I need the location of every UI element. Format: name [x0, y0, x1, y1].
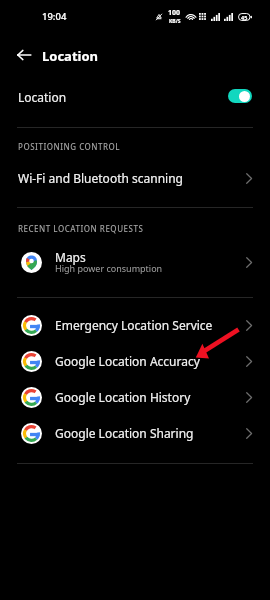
- staticText: Emergency Location Service: [55, 317, 246, 333]
- staticText: Google Location Sharing: [55, 425, 246, 441]
- staticText: RECENT LOCATION REQUESTS: [18, 223, 144, 234]
- staticText: Location: [18, 89, 228, 105]
- button[interactable]: Location: [0, 78, 270, 114]
- staticText: High power consumption: [55, 262, 163, 274]
- staticText: Google Location Accuracy: [55, 353, 246, 369]
- button[interactable]: Wi-Fi and Bluetooth scanning: [0, 161, 270, 195]
- staticText: POSITIONING CONTROL: [18, 141, 121, 152]
- staticText: KB/S: [169, 18, 181, 25]
- staticText: Location: [42, 47, 98, 65]
- staticText: 45: [241, 14, 248, 21]
- staticText: Wi-Fi and Bluetooth scanning: [18, 170, 246, 186]
- button[interactable]: Back: [9, 40, 39, 70]
- button[interactable]: Google Location History: [0, 380, 270, 414]
- staticText: 100: [168, 8, 181, 18]
- button[interactable]: Google Location Sharing: [0, 416, 270, 450]
- staticText: Maps: [55, 249, 86, 265]
- staticText: Google Location History: [55, 389, 246, 405]
- button[interactable]: Emergency Location Service: [0, 308, 270, 342]
- button[interactable]: Google Location Accuracy: [0, 344, 270, 378]
- button[interactable]: Maps: [0, 243, 270, 281]
- staticText: 19:04: [42, 10, 67, 23]
